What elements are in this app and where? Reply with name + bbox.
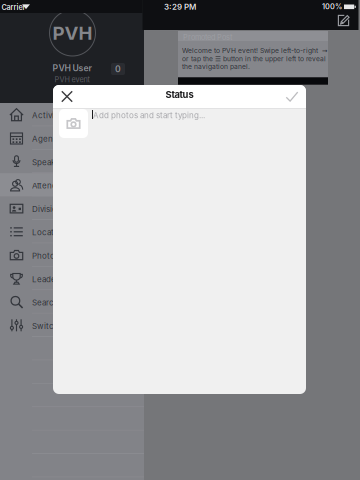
staticText: Attendees [32,181,71,190]
staticText: Agenda [32,134,62,144]
staticText: Locations [32,228,70,237]
button[interactable]: Photos [0,243,144,267]
staticText: PVH event [54,75,89,84]
staticText: Leaderboard [32,274,81,284]
staticText: the navigation panel. [182,63,250,71]
button[interactable]: Leaderboard [0,267,144,290]
button[interactable]: Speakers [0,150,144,173]
button[interactable]: Search [0,290,144,314]
staticText: Status [165,89,193,100]
staticText: or tap the ☰ button in the upper left to… [182,55,326,63]
staticText: Carrier [1,3,25,12]
button[interactable]: Compose [330,12,356,29]
button[interactable]: Attendees [0,173,144,197]
staticText: Activity [32,111,61,120]
staticText: Switch [32,321,59,331]
staticText: 100% [322,2,342,11]
staticText: Promoted Post [183,33,232,42]
button[interactable]: Switch [0,314,144,337]
button[interactable]: Close [53,85,81,108]
button[interactable]: Activity [0,103,144,126]
staticText: Speakers [32,157,67,167]
button[interactable]: Agenda [0,126,144,150]
staticText: 3:29 PM [164,2,196,12]
staticText: Photos [32,251,59,261]
staticText: PVH [52,22,92,44]
staticText: 0 [115,64,121,74]
staticText: Add photos and start typing... [93,110,205,120]
button[interactable]: Post [278,85,306,108]
staticText: PVH User [52,63,91,73]
button[interactable]: Divisions [0,197,144,220]
staticText: Welcome to PVH event! Swipe left-to-righ… [182,47,328,55]
staticText: Divisions [32,204,66,214]
staticText: Search [32,298,59,307]
button[interactable]: Locations [0,220,144,243]
